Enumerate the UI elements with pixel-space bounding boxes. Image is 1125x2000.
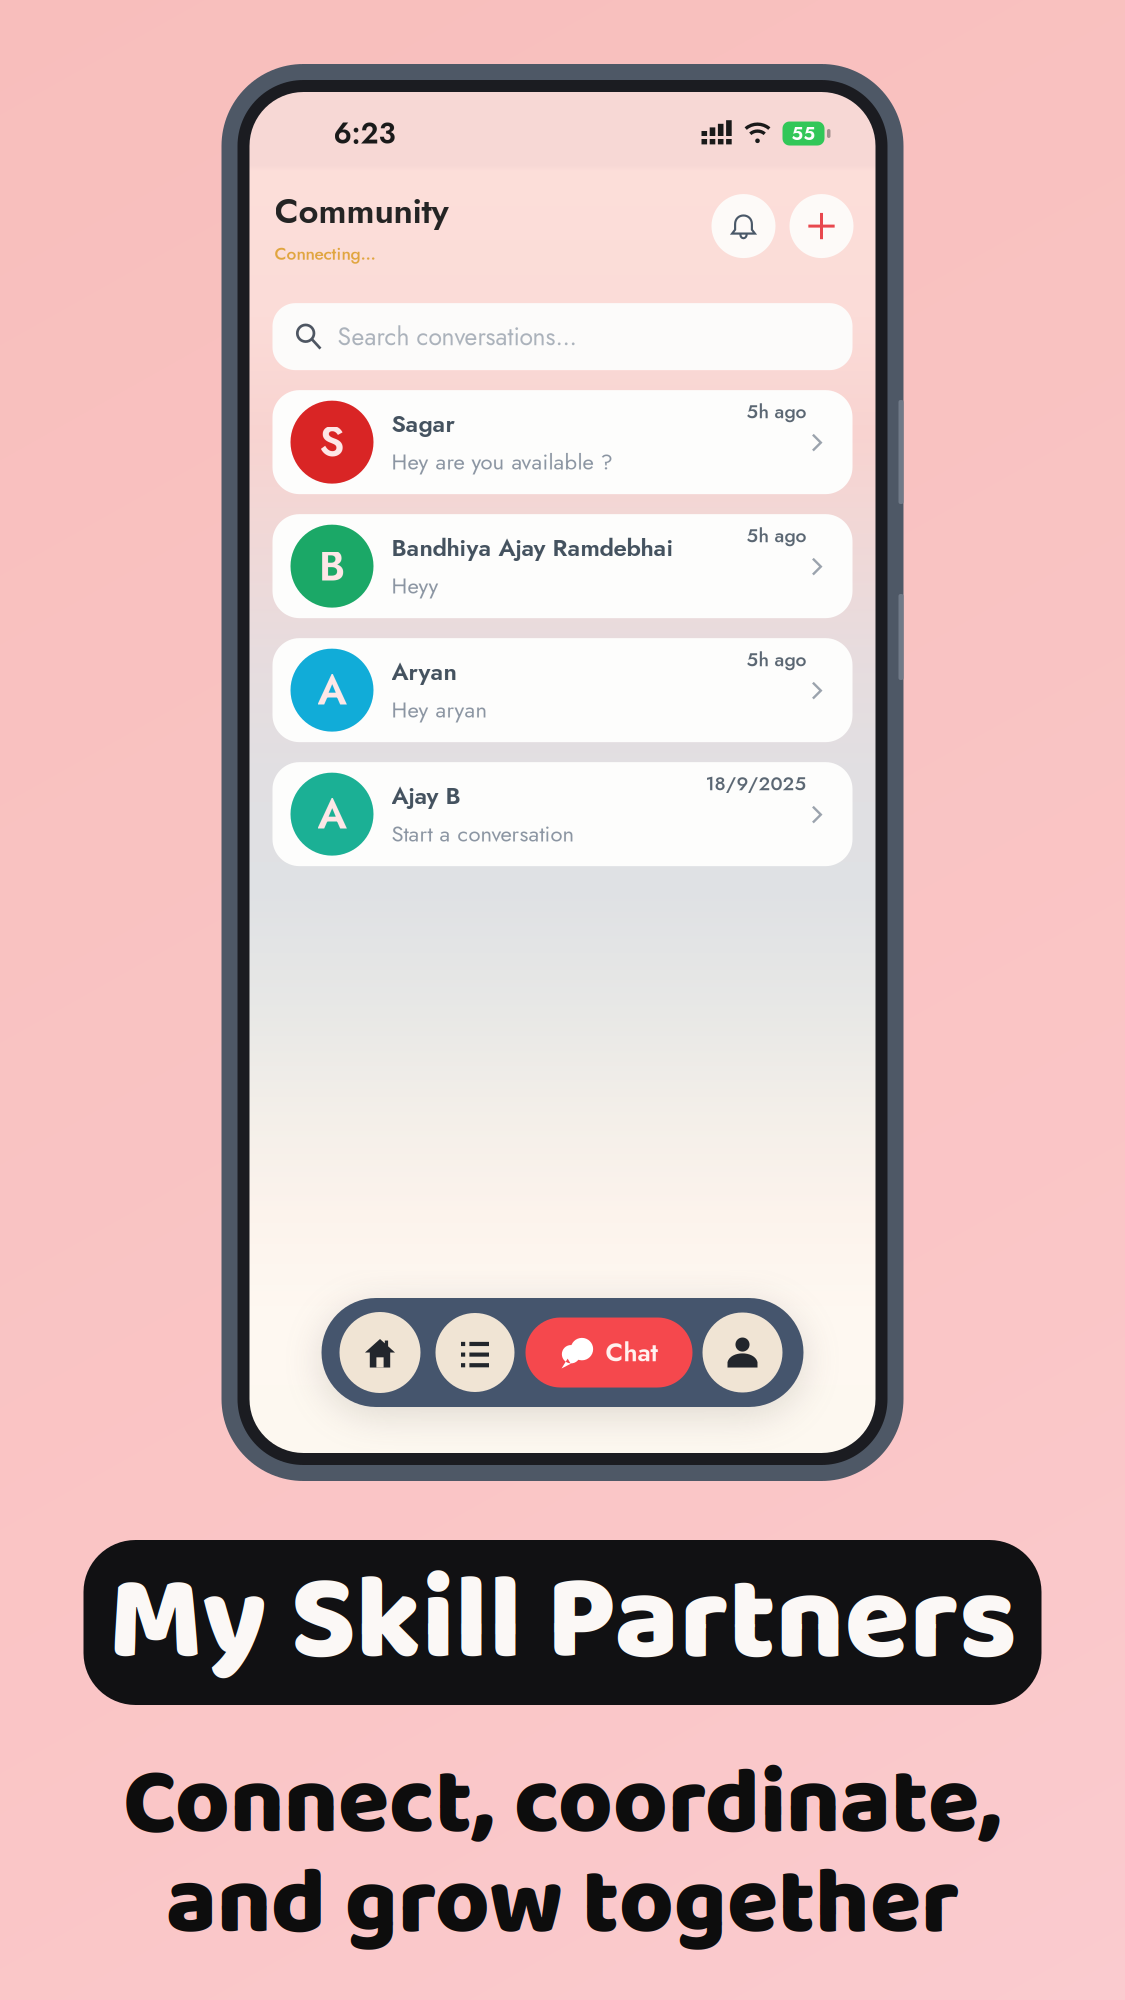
staticText: Search conversations... — [337, 319, 576, 354]
button[interactable]: Search conversations... — [272, 303, 852, 370]
staticText: Sagar — [391, 406, 454, 441]
staticText: Start a conversation — [391, 818, 574, 850]
staticText: 18/9/2025 — [705, 770, 806, 798]
button[interactable]: Chat — [525, 1317, 692, 1387]
staticText: Ajay B — [391, 778, 460, 813]
staticText: 5h ago — [746, 522, 806, 550]
staticText: S — [319, 412, 344, 472]
staticText: 5h ago — [746, 398, 806, 426]
button[interactable]: S — [272, 390, 852, 494]
staticText: Hey are you available ? — [391, 446, 612, 478]
staticText: Hey aryan — [391, 694, 487, 726]
staticText: Heyy — [391, 570, 438, 602]
staticText: B — [319, 536, 345, 596]
button[interactable]: A — [272, 638, 852, 742]
staticText: A — [317, 784, 346, 844]
button[interactable]: Profile — [702, 1312, 782, 1392]
button[interactable]: New conversation — [789, 194, 853, 258]
staticText: and grow together — [166, 1830, 959, 1980]
button[interactable]: Home — [339, 1312, 420, 1393]
button[interactable]: A — [272, 762, 852, 866]
staticText: 6:23 — [333, 113, 395, 154]
staticText: 55 — [791, 120, 815, 147]
staticText: Chat — [605, 1334, 657, 1371]
staticText: Bandhiya Ajay Ramdebhai — [391, 530, 673, 565]
staticText: My Skill Partners — [108, 1527, 1016, 1717]
staticText: Community — [274, 186, 448, 236]
staticText: 5h ago — [746, 646, 806, 674]
button[interactable]: Notifications — [711, 194, 775, 258]
staticText: A — [317, 660, 346, 720]
button[interactable]: Activity — [435, 1313, 514, 1392]
staticText: Aryan — [391, 654, 456, 689]
staticText: Connecting... — [274, 241, 375, 266]
staticText: Connect, coordinate, — [123, 1730, 1002, 1880]
button[interactable]: B — [272, 514, 852, 618]
